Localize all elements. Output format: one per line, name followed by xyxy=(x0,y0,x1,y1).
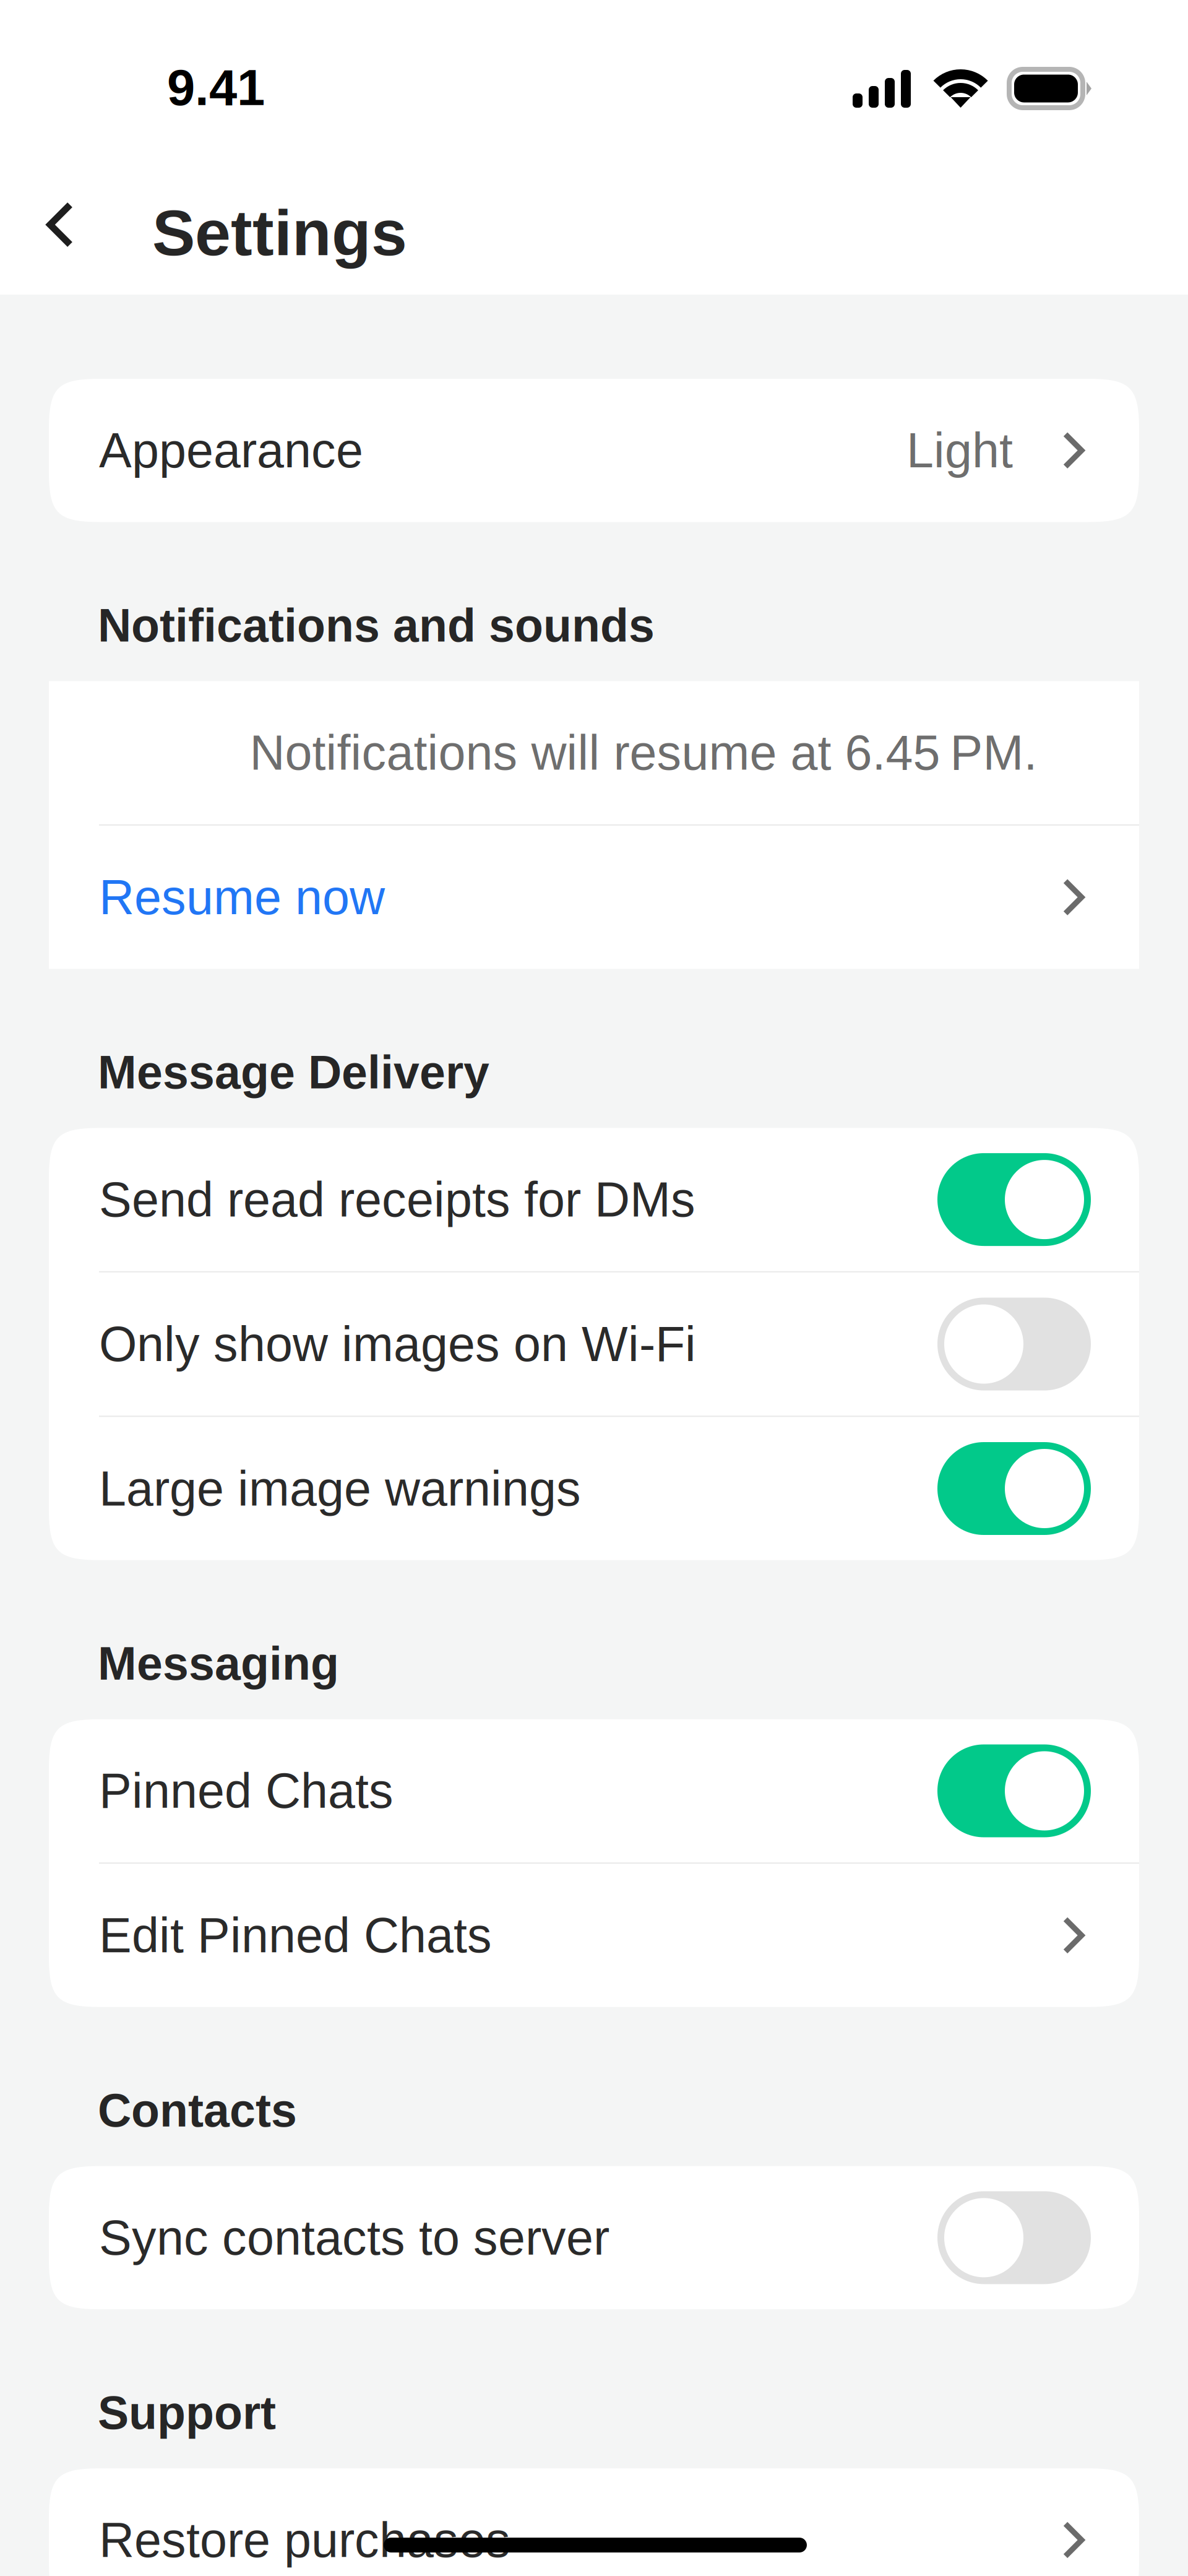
staticText: Restore purchases xyxy=(99,2513,510,2567)
staticText: Appearance xyxy=(99,423,363,478)
staticText: Settings xyxy=(152,197,407,269)
button[interactable]: Appearance xyxy=(49,379,1139,522)
button[interactable]: Restore purchases xyxy=(49,2468,1139,2576)
staticText: Resume now xyxy=(99,870,385,925)
staticText: 9.41 xyxy=(167,59,265,116)
button[interactable]: Back xyxy=(28,188,92,262)
staticText: Light xyxy=(906,423,1013,478)
staticText: Only show images on Wi-Fi xyxy=(99,1317,696,1371)
button[interactable]: Resume now xyxy=(49,826,1139,969)
staticText: Support xyxy=(98,2387,276,2439)
button[interactable]: Edit Pinned Chats xyxy=(49,1864,1139,2007)
staticText: Contacts xyxy=(98,2084,297,2136)
staticText: Notifications will resume at 6.45 PM. xyxy=(250,725,1037,780)
staticText: Notifications and sounds xyxy=(98,599,655,651)
staticText: Pinned Chats xyxy=(99,1764,394,1818)
staticText: Sync contacts to server xyxy=(99,2210,609,2265)
staticText: Message Delivery xyxy=(98,1046,489,1098)
staticText: Edit Pinned Chats xyxy=(99,1908,492,1963)
staticText: Messaging xyxy=(98,1638,339,1690)
staticText: Send read receipts for DMs xyxy=(99,1172,695,1227)
staticText: Large image warnings xyxy=(99,1461,581,1516)
